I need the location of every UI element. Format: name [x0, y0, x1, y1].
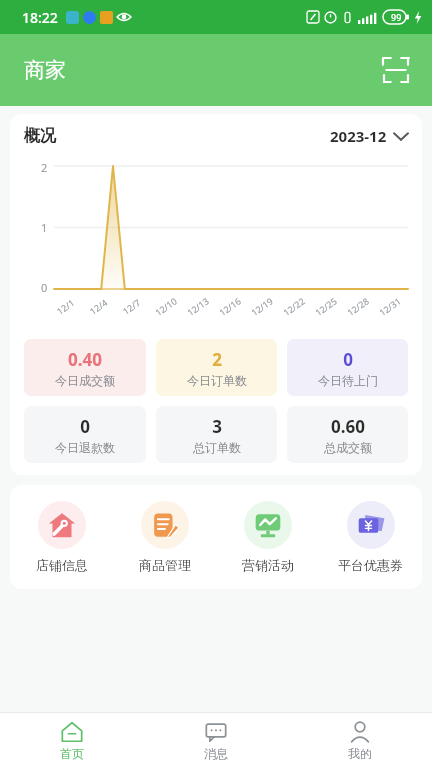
staticText: 12/4: [87, 296, 109, 317]
button[interactable]: 消息: [144, 713, 288, 768]
staticText: 营销活动: [242, 557, 294, 573]
staticText: 12/13: [184, 295, 211, 318]
staticText: 3: [212, 415, 222, 438]
button[interactable]: 商品管理: [113, 501, 216, 573]
button[interactable]: 0.40: [24, 339, 146, 396]
button[interactable]: 2023-12: [330, 126, 408, 146]
staticText: 首页: [60, 746, 84, 761]
staticText: 2: [41, 160, 48, 175]
staticText: 1: [41, 220, 48, 235]
staticText: 我的: [348, 746, 372, 761]
staticText: 12/22: [280, 295, 307, 318]
button[interactable]: 平台优惠券: [319, 501, 422, 573]
staticText: 2023-12: [330, 126, 387, 146]
button[interactable]: 0.60: [287, 406, 408, 463]
button[interactable]: 0: [24, 406, 146, 463]
staticText: 0.40: [68, 348, 102, 371]
staticText: 12/25: [312, 295, 339, 318]
staticText: 12/7: [120, 296, 142, 317]
staticText: 0: [80, 415, 90, 438]
button[interactable]: 0: [287, 339, 408, 396]
staticText: 18:22: [22, 8, 58, 27]
staticText: 消息: [204, 746, 228, 761]
staticText: 0.60: [331, 415, 365, 438]
staticText: 2: [212, 348, 222, 371]
staticText: 今日待上门: [318, 373, 378, 388]
staticText: 0: [41, 280, 48, 295]
staticText: 总成交额: [324, 440, 372, 455]
staticText: 概况: [24, 126, 56, 146]
staticText: 12/28: [344, 295, 371, 318]
staticText: 商品管理: [139, 557, 191, 573]
button[interactable]: 店铺信息: [10, 501, 113, 573]
staticText: 12/1: [54, 296, 76, 317]
button[interactable]: Scan: [378, 52, 414, 88]
staticText: 店铺信息: [36, 557, 88, 573]
button[interactable]: 我的: [288, 713, 432, 768]
staticText: 0: [343, 348, 353, 371]
staticText: 12/10: [152, 295, 179, 318]
staticText: 今日退款数: [55, 440, 115, 455]
staticText: 平台优惠券: [338, 557, 403, 573]
staticText: 12/31: [376, 295, 403, 318]
button[interactable]: 3: [156, 406, 277, 463]
staticText: 12/19: [248, 295, 275, 318]
button[interactable]: 2: [156, 339, 277, 396]
staticText: 总订单数: [193, 440, 241, 455]
staticText: 今日成交额: [55, 373, 115, 388]
staticText: 12/16: [216, 295, 243, 318]
button[interactable]: 营销活动: [216, 501, 319, 573]
staticText: 99: [391, 11, 402, 23]
staticText: 商家: [24, 57, 66, 83]
staticText: 今日订单数: [187, 373, 247, 388]
button[interactable]: 首页: [0, 713, 144, 768]
